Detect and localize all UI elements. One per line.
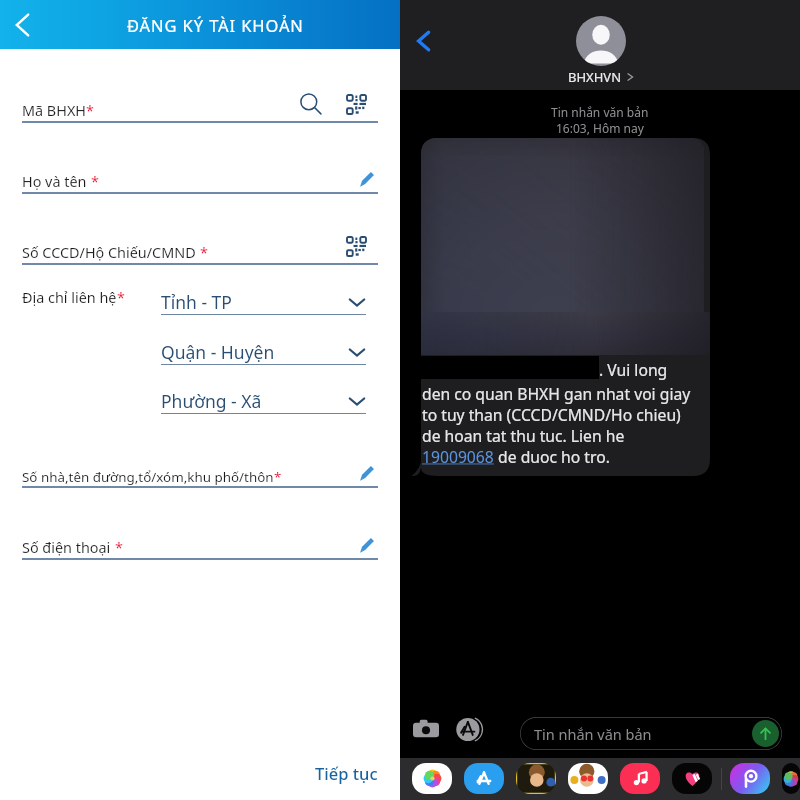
button[interactable]: Edit	[353, 166, 379, 192]
button[interactable]: Contact avatar	[576, 16, 626, 66]
button[interactable]: Tiếp tục	[315, 762, 378, 784]
staticText: ĐĂNG KÝ TÀI KHOẢN	[127, 14, 304, 36]
button[interactable]: Back	[409, 27, 437, 55]
button[interactable]: App	[516, 763, 556, 794]
staticText: *	[200, 243, 208, 263]
staticText: Địa chỉ liên hệ	[22, 288, 117, 308]
button[interactable]: Edit	[353, 532, 379, 558]
staticText: *	[91, 172, 99, 192]
button[interactable]: Scan QR code	[343, 91, 369, 117]
staticText: *	[274, 468, 282, 486]
button[interactable]: Địa chỉ liên hệ	[22, 288, 125, 308]
staticText: BHXHVN	[568, 68, 622, 86]
button[interactable]: App	[730, 763, 770, 794]
staticText: Mã BHXH	[22, 101, 86, 121]
button[interactable]: Quận - Huyện	[161, 338, 366, 365]
button[interactable]: Edit	[353, 460, 379, 486]
staticText: to tuy than (CCCD/CMND/Ho chieu)	[422, 404, 681, 425]
button[interactable]: Số nhà,tên đường,tổ/xóm,khu phố/thôn	[22, 462, 378, 486]
button[interactable]: App	[412, 763, 452, 794]
button[interactable]: App	[782, 763, 800, 794]
button[interactable]: Scan QR code	[343, 233, 369, 259]
button[interactable]: Phường - Xã	[161, 387, 366, 414]
button[interactable]: Mã BHXH	[22, 97, 378, 121]
staticText: Phường - Xã	[161, 389, 262, 413]
button[interactable]: den co quan BHXH gan nhat voi giay	[411, 138, 710, 476]
staticText: 19009068	[422, 446, 494, 467]
staticText: Số điện thoại	[22, 538, 115, 558]
staticText: Tin nhắn văn bản	[534, 724, 652, 744]
button[interactable]: Họ và tên	[22, 168, 378, 192]
button[interactable]: Tỉnh - TP	[161, 288, 366, 315]
staticText: Số CCCD/Hộ Chiếu/CMND	[22, 243, 200, 263]
staticText: 16:03, Hôm nay	[556, 120, 644, 136]
button[interactable]: Số CCCD/Hộ Chiếu/CMND	[22, 239, 378, 263]
staticText: de duoc ho tro.	[494, 446, 610, 467]
staticText: *	[86, 101, 94, 121]
button[interactable]: App	[672, 763, 712, 794]
button[interactable]: Camera	[411, 714, 441, 744]
staticText: Tỉnh - TP	[161, 290, 232, 314]
button[interactable]: Tin nhắn văn bản	[520, 717, 782, 750]
staticText: Họ và tên	[22, 172, 91, 192]
button[interactable]: Back	[5, 7, 41, 43]
button[interactable]: Số điện thoại	[22, 534, 378, 558]
staticText: Quận - Huyện	[161, 340, 275, 364]
button[interactable]: App	[568, 763, 608, 794]
staticText: *	[115, 538, 123, 558]
button[interactable]: Search	[298, 91, 324, 117]
staticText: Tin nhắn văn bản	[551, 104, 649, 120]
staticText: de hoan tat thu tuc. Lien he	[422, 425, 625, 446]
button[interactable]: Send	[752, 720, 779, 747]
staticText: Tiếp tục	[315, 762, 378, 784]
button[interactable]: App	[464, 763, 504, 794]
staticText: den co quan BHXH gan nhat voi giay	[422, 383, 691, 404]
button[interactable]: App Store	[454, 714, 484, 744]
staticText: Số nhà,tên đường,tổ/xóm,khu phố/thôn	[22, 468, 274, 486]
staticText: . Vui long	[599, 359, 668, 380]
staticText: *	[117, 288, 125, 308]
button[interactable]: App	[620, 763, 660, 794]
